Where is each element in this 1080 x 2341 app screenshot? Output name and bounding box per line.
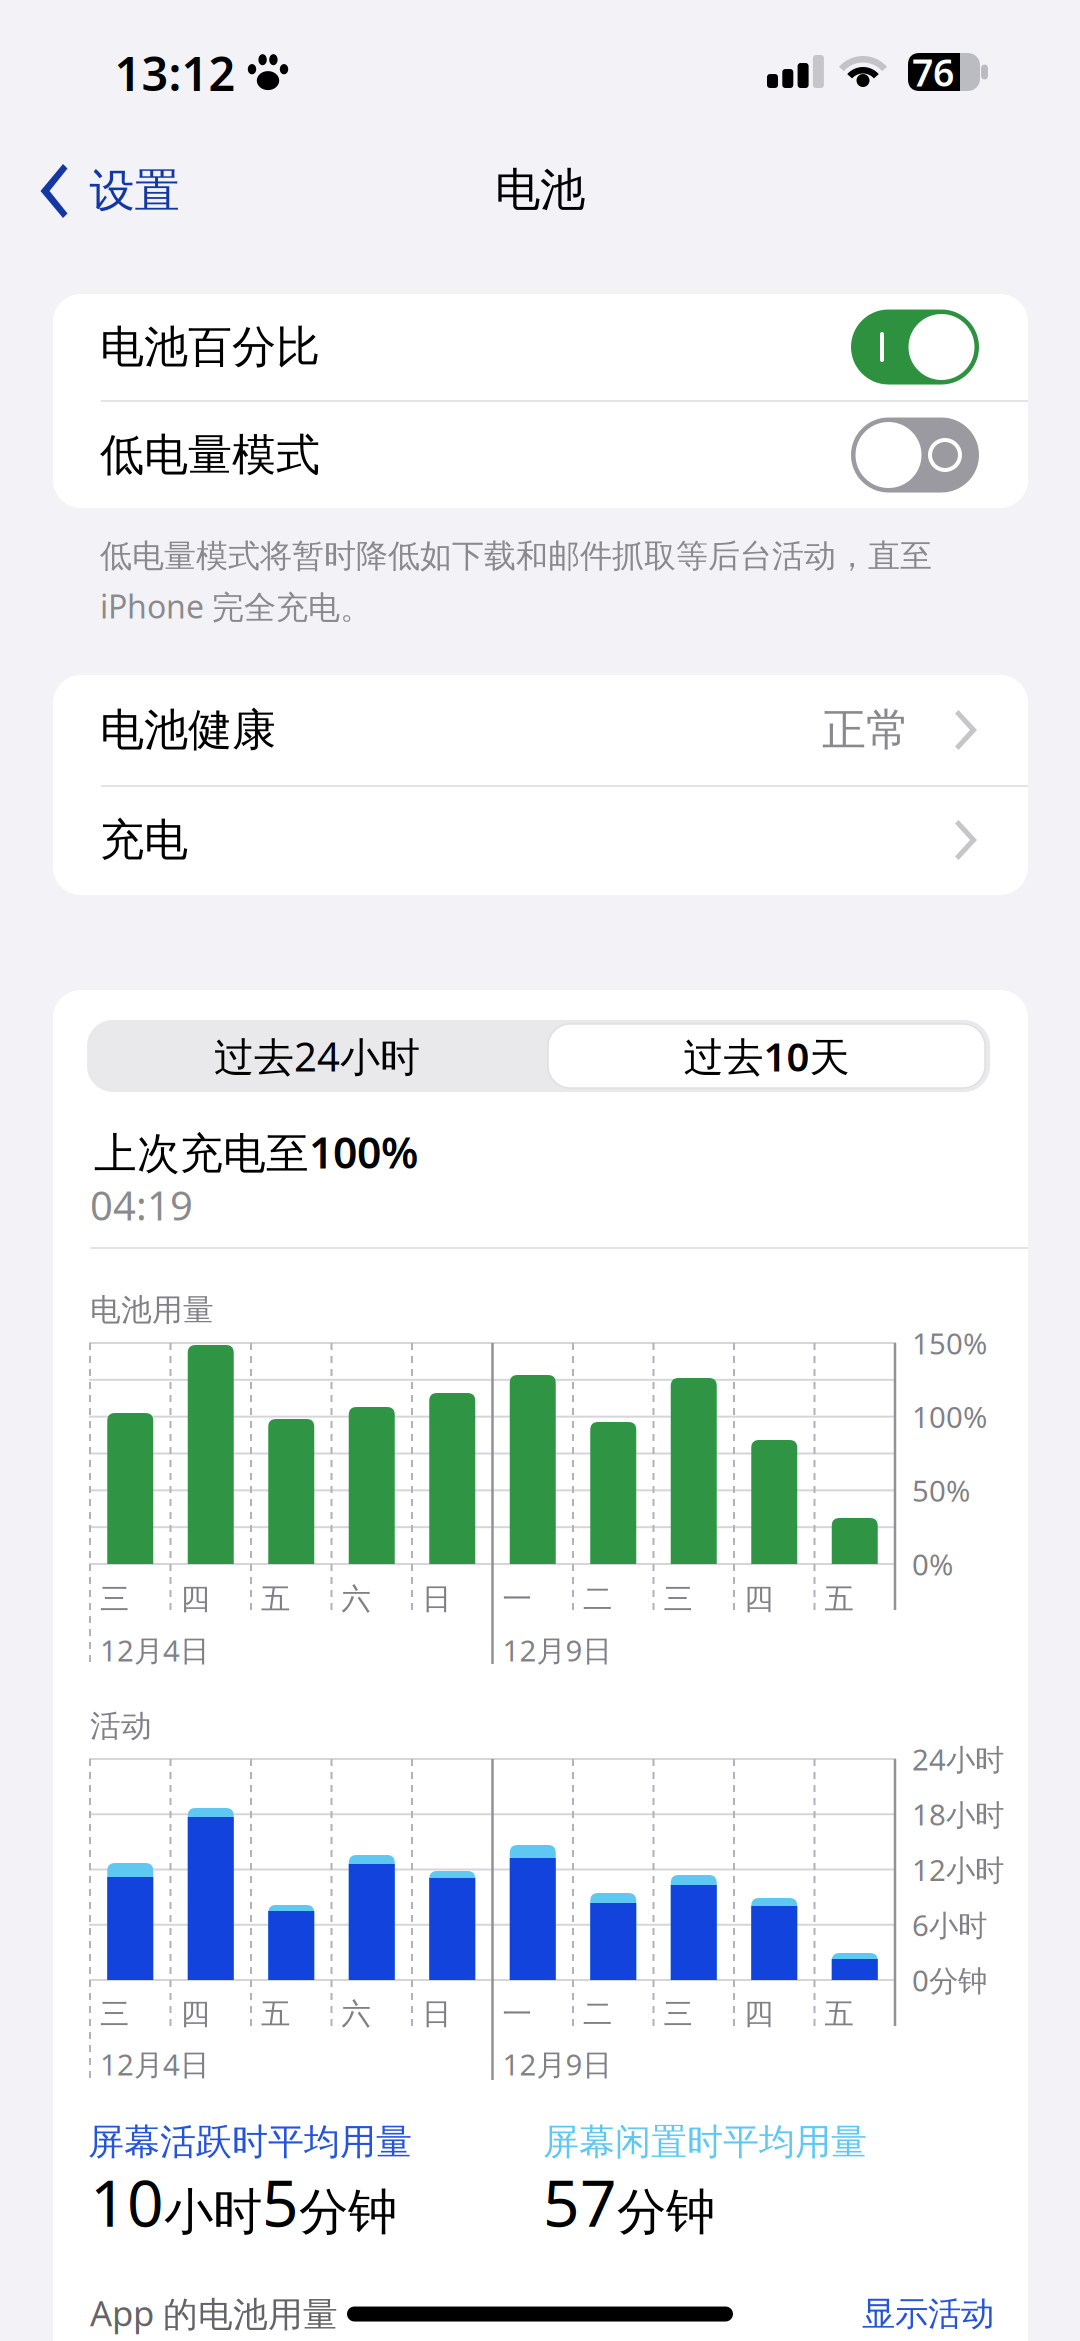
staticText: 设置 bbox=[89, 163, 179, 219]
button[interactable]: 电池百分比 bbox=[851, 309, 979, 384]
staticText: 上次充电至100% bbox=[94, 1124, 418, 1180]
staticText: 04:19 bbox=[90, 1178, 193, 1231]
staticText: 日 bbox=[422, 1581, 451, 1617]
staticText: 低电量模式 bbox=[100, 428, 320, 482]
staticText: 三 bbox=[100, 1581, 129, 1617]
button[interactable]: 低电量模式 bbox=[851, 417, 979, 492]
staticText: 三 bbox=[663, 1996, 692, 2032]
staticText: 100% bbox=[912, 1397, 987, 1436]
staticText: 五 bbox=[824, 1996, 853, 2032]
staticText: 五 bbox=[261, 1996, 290, 2032]
staticText: 正常 bbox=[822, 703, 910, 757]
staticText: 18小时 bbox=[912, 1795, 1004, 1834]
staticText: 电池健康 bbox=[100, 703, 276, 757]
staticText: 二 bbox=[583, 1581, 612, 1617]
staticText: 三 bbox=[663, 1581, 692, 1617]
staticText: App 的电池用量 bbox=[90, 2290, 338, 2336]
staticText: 二 bbox=[583, 1996, 612, 2032]
staticText: 四 bbox=[180, 1996, 209, 2032]
staticText: 电池 bbox=[495, 162, 585, 218]
staticText: 过去24小时 bbox=[214, 1029, 420, 1082]
staticText: 四 bbox=[744, 1581, 773, 1617]
staticText: 12月9日 bbox=[502, 2044, 611, 2083]
staticText: 六 bbox=[341, 1996, 370, 2032]
staticText: 0分钟 bbox=[912, 1960, 987, 1999]
staticText: 四 bbox=[180, 1581, 209, 1617]
button[interactable]: 电池健康 bbox=[53, 675, 1028, 785]
staticText: 日 bbox=[422, 1996, 451, 2032]
staticText: 12月4日 bbox=[100, 1630, 209, 1669]
staticText: 一 bbox=[502, 1996, 531, 2032]
staticText: 12小时 bbox=[912, 1850, 1004, 1889]
staticText: 充电 bbox=[100, 813, 188, 867]
staticText: 三 bbox=[100, 1996, 129, 2032]
staticText: 50% bbox=[912, 1471, 970, 1510]
staticText: 电池百分比 bbox=[100, 320, 320, 374]
staticText: 76 bbox=[912, 47, 954, 97]
staticText: 屏幕活跃时平均用量 bbox=[88, 2120, 412, 2164]
staticText: 活动 bbox=[90, 1707, 152, 1745]
staticText: 过去10天 bbox=[683, 1029, 849, 1082]
button[interactable]: 过去24小时 bbox=[97, 1020, 537, 1092]
button[interactable]: 过去10天 bbox=[545, 1020, 988, 1092]
staticText: 13:12 bbox=[114, 42, 235, 104]
staticText: 24小时 bbox=[912, 1739, 1004, 1778]
staticText: 12月4日 bbox=[100, 2044, 209, 2083]
staticText: 150% bbox=[912, 1323, 987, 1362]
staticText: 屏幕闲置时平均用量 bbox=[543, 2120, 867, 2164]
button[interactable]: 返回设置 bbox=[40, 163, 179, 219]
staticText: 0% bbox=[912, 1544, 953, 1583]
staticText: 五 bbox=[261, 1581, 290, 1617]
staticText: 10小时5分钟 bbox=[90, 2159, 397, 2244]
staticText: 12月9日 bbox=[502, 1630, 611, 1669]
staticText: 低电量模式将暂时降低如下载和邮件抓取等后台活动，直至 iPhone 完全充电。 bbox=[100, 536, 932, 627]
staticText: 电池用量 bbox=[90, 1291, 214, 1329]
staticText: 五 bbox=[824, 1581, 853, 1617]
button[interactable]: 显示活动 bbox=[862, 2293, 994, 2334]
staticText: 四 bbox=[744, 1996, 773, 2032]
staticText: 57分钟 bbox=[543, 2159, 715, 2244]
staticText: 一 bbox=[502, 1581, 531, 1617]
staticText: 六 bbox=[341, 1581, 370, 1617]
staticText: 显示活动 bbox=[862, 2293, 994, 2334]
staticText: 6小时 bbox=[912, 1905, 987, 1944]
button[interactable]: 充电 bbox=[53, 785, 1028, 895]
